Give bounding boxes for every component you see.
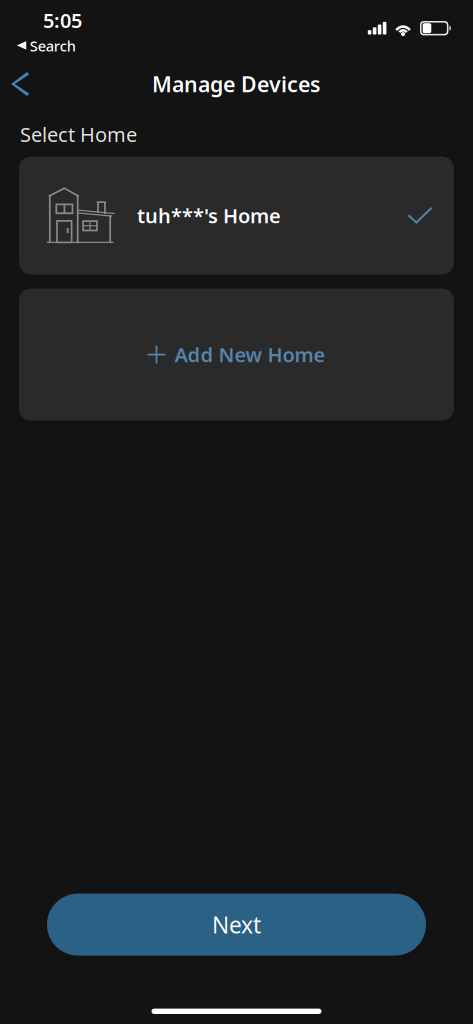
staticText: Select Home [20,121,137,148]
staticText: Next [212,909,261,940]
staticText: tuh***'s Home [137,202,281,229]
staticText: Search [30,36,76,55]
button[interactable]: Next [47,894,426,956]
staticText: Manage Devices [152,70,321,98]
staticText: 5:05 [43,7,82,34]
staticText: Add New Home [174,341,325,368]
button[interactable]: Add New Home [19,289,454,421]
button[interactable]: Back [0,61,44,107]
button[interactable]: tuh***'s Home [19,157,454,275]
